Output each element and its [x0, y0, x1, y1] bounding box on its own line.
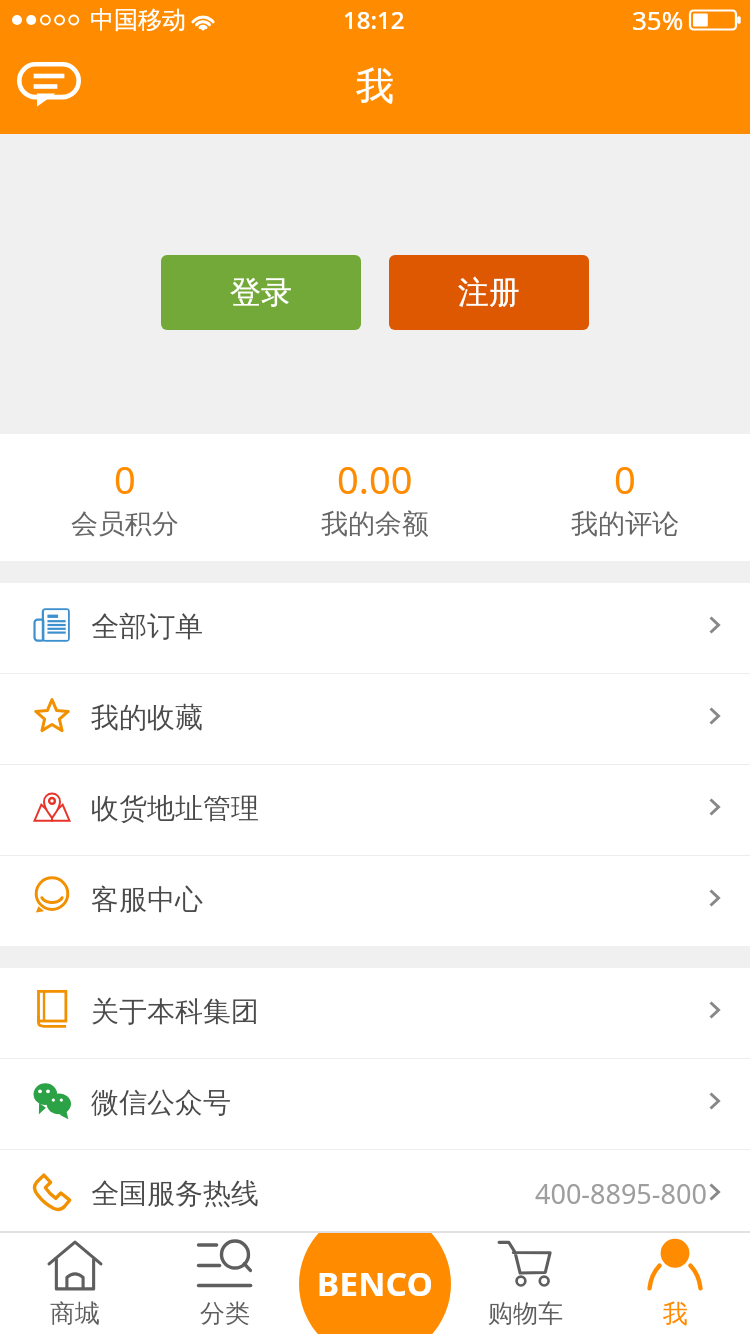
staticText: 客服中心 [91, 882, 203, 917]
staticText: 会员积分 [71, 507, 179, 541]
staticText: 0 [114, 453, 136, 505]
staticText: 中国移动 [90, 5, 186, 35]
button[interactable]: 登录 [161, 255, 361, 330]
staticText: 35% [632, 2, 684, 37]
button[interactable]: 0.00 [250, 434, 500, 561]
staticText: 收货地址管理 [91, 791, 259, 826]
staticText: 微信公众号 [91, 1085, 231, 1120]
staticText: 分类 [200, 1298, 250, 1329]
button[interactable]: 0 [500, 434, 750, 561]
staticText: 商城 [50, 1298, 100, 1329]
staticText: 400-8895-800 [535, 1175, 707, 1212]
button[interactable]: Messages [17, 62, 81, 107]
button[interactable]: 我 [600, 1231, 750, 1334]
staticText: 我的评论 [571, 507, 679, 541]
staticText: 购物车 [488, 1298, 563, 1329]
staticText: 我 [663, 1298, 688, 1329]
staticText: BENCO [317, 1261, 434, 1306]
staticText: 全国服务热线 [91, 1176, 259, 1211]
button[interactable]: 注册 [389, 255, 589, 330]
button[interactable]: 分类 [150, 1231, 300, 1334]
button[interactable]: 关于本科集团 [0, 968, 750, 1058]
staticText: 18:12 [343, 3, 405, 36]
button[interactable]: 全国服务热线 [0, 1150, 750, 1240]
button[interactable]: BENCO [299, 1233, 451, 1334]
staticText: 注册 [458, 273, 520, 312]
staticText: 0 [614, 453, 636, 505]
staticText: 关于本科集团 [91, 994, 259, 1029]
button[interactable]: 购物车 [450, 1231, 600, 1334]
button[interactable]: 微信公众号 [0, 1059, 750, 1149]
staticText: 我的收藏 [91, 700, 203, 735]
button[interactable]: 全部订单 [0, 583, 750, 673]
staticText: 我的余额 [321, 507, 429, 541]
button[interactable]: 商城 [0, 1231, 150, 1334]
button[interactable]: 收货地址管理 [0, 765, 750, 855]
button[interactable]: 0 [0, 434, 250, 561]
staticText: 全部订单 [91, 609, 203, 644]
staticText: 登录 [230, 273, 292, 312]
staticText: 我 [356, 62, 394, 110]
staticText: 0.00 [337, 453, 413, 505]
button[interactable]: 我的收藏 [0, 674, 750, 764]
button[interactable]: 客服中心 [0, 856, 750, 946]
